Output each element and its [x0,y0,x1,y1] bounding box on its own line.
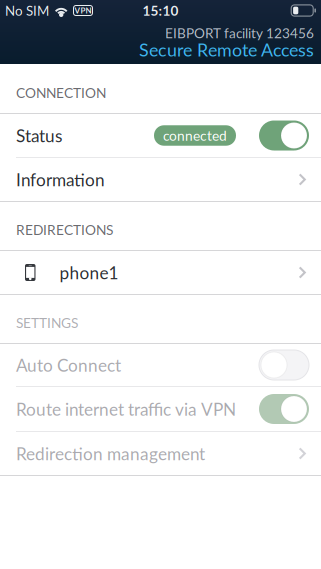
staticText: Secure Remote Access [139,39,314,60]
button[interactable]: Auto Connect [0,344,321,386]
button[interactable]: Route internet traffic via VPN [0,387,321,431]
staticText: connected [163,127,227,144]
button[interactable]: Information [0,158,321,201]
staticText: Redirection management [16,443,205,464]
staticText: Information [16,169,105,190]
staticText: CONNECTION [16,84,106,101]
staticText: SETTINGS [16,314,78,331]
staticText: VPN [74,6,91,15]
staticText: 15:10 [142,2,178,19]
staticText: No SIM [5,2,49,18]
staticText: REDIRECTIONS [16,221,113,238]
button[interactable]: Status [0,114,321,157]
button[interactable]: Redirection management [0,432,321,475]
staticText: phone1 [59,262,118,283]
staticText: Auto Connect [16,355,121,375]
staticText: EIBPORT facility 123456 [165,25,314,41]
button[interactable]: phone1 [0,251,321,294]
staticText: Status [16,125,62,146]
staticText: Route internet traffic via VPN [16,399,236,419]
